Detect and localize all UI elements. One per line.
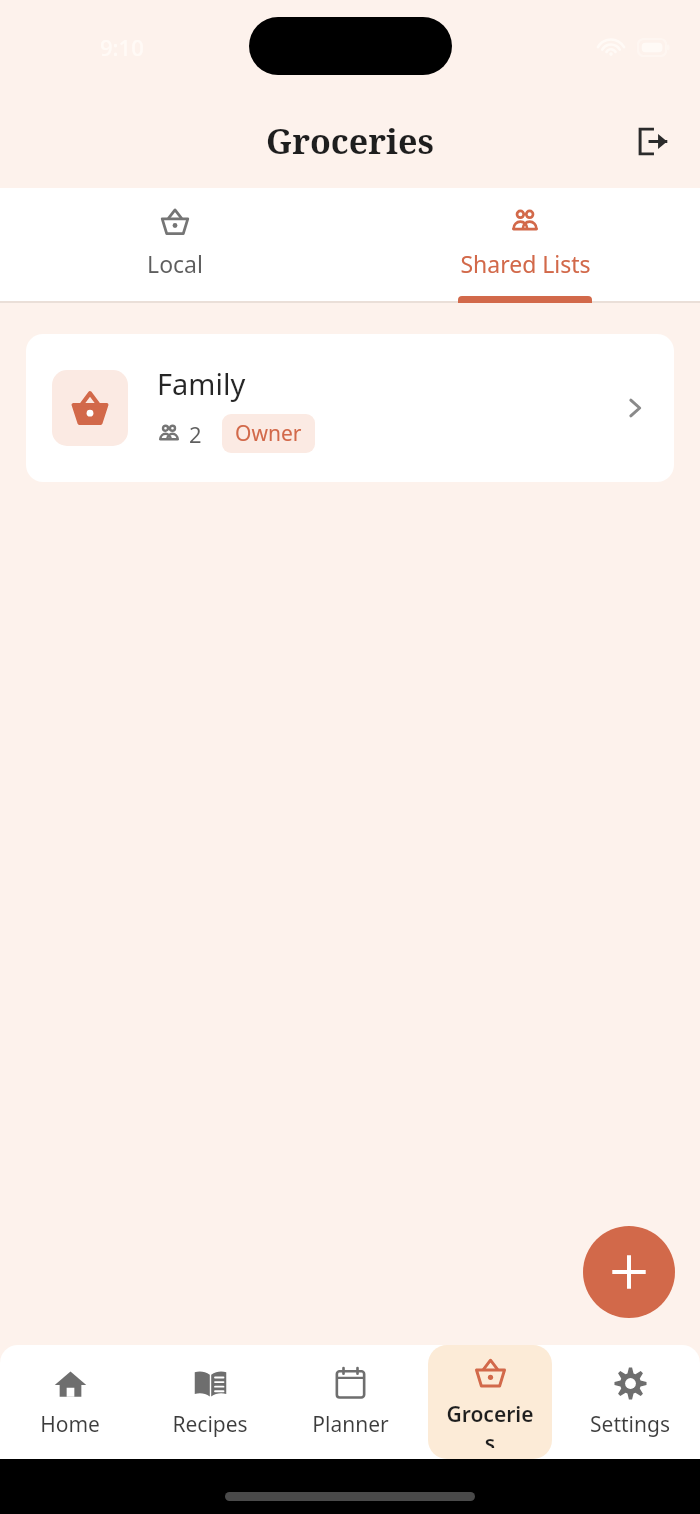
button[interactable]: Home — [22, 1355, 118, 1450]
staticText: 9:10 — [100, 32, 144, 62]
staticText: Recipes — [172, 1410, 248, 1439]
button[interactable]: Shared Lists — [350, 188, 700, 303]
staticText: Planner — [312, 1410, 389, 1439]
button[interactable]: Sign out — [626, 115, 678, 167]
button[interactable]: Planner — [294, 1355, 407, 1450]
staticText: Groceries — [446, 1400, 534, 1448]
button[interactable]: Recipes — [154, 1355, 266, 1450]
staticText: Groceries — [266, 118, 434, 164]
staticText: Shared Lists — [460, 248, 591, 279]
button[interactable]: Settings — [572, 1355, 688, 1450]
staticText: Home — [40, 1410, 100, 1439]
staticText: Settings — [590, 1410, 670, 1439]
button[interactable]: Groceries — [428, 1345, 552, 1459]
staticText: 2 — [189, 419, 202, 449]
staticText: Owner — [235, 419, 302, 448]
staticText: Family — [157, 364, 246, 403]
button[interactable]: Add shared list — [583, 1226, 675, 1318]
button[interactable]: Family — [26, 334, 674, 482]
staticText: Local — [147, 248, 203, 279]
button[interactable]: Local — [0, 188, 350, 303]
